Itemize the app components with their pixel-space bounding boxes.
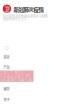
button[interactable]: 产品: [0, 0, 9, 69]
staticText: 卫: [4, 5, 9, 13]
staticText: 产品: [3, 65, 9, 69]
staticText: 更新时间今日上午: [3, 17, 27, 21]
staticText: 服务: [3, 86, 9, 91]
staticText: 关于: [3, 97, 9, 102]
button[interactable]: 关于: [0, 0, 9, 102]
button[interactable]: [0, 0, 33, 82]
button[interactable]: 首页: [0, 0, 9, 59]
staticText: 新冠肺炎疫情: [13, 5, 43, 13]
staticText: 实时疫情动态数据来源国家卫健委: [3, 14, 48, 18]
staticText: 首页: [3, 55, 9, 59]
button[interactable]: 服务: [0, 0, 9, 91]
